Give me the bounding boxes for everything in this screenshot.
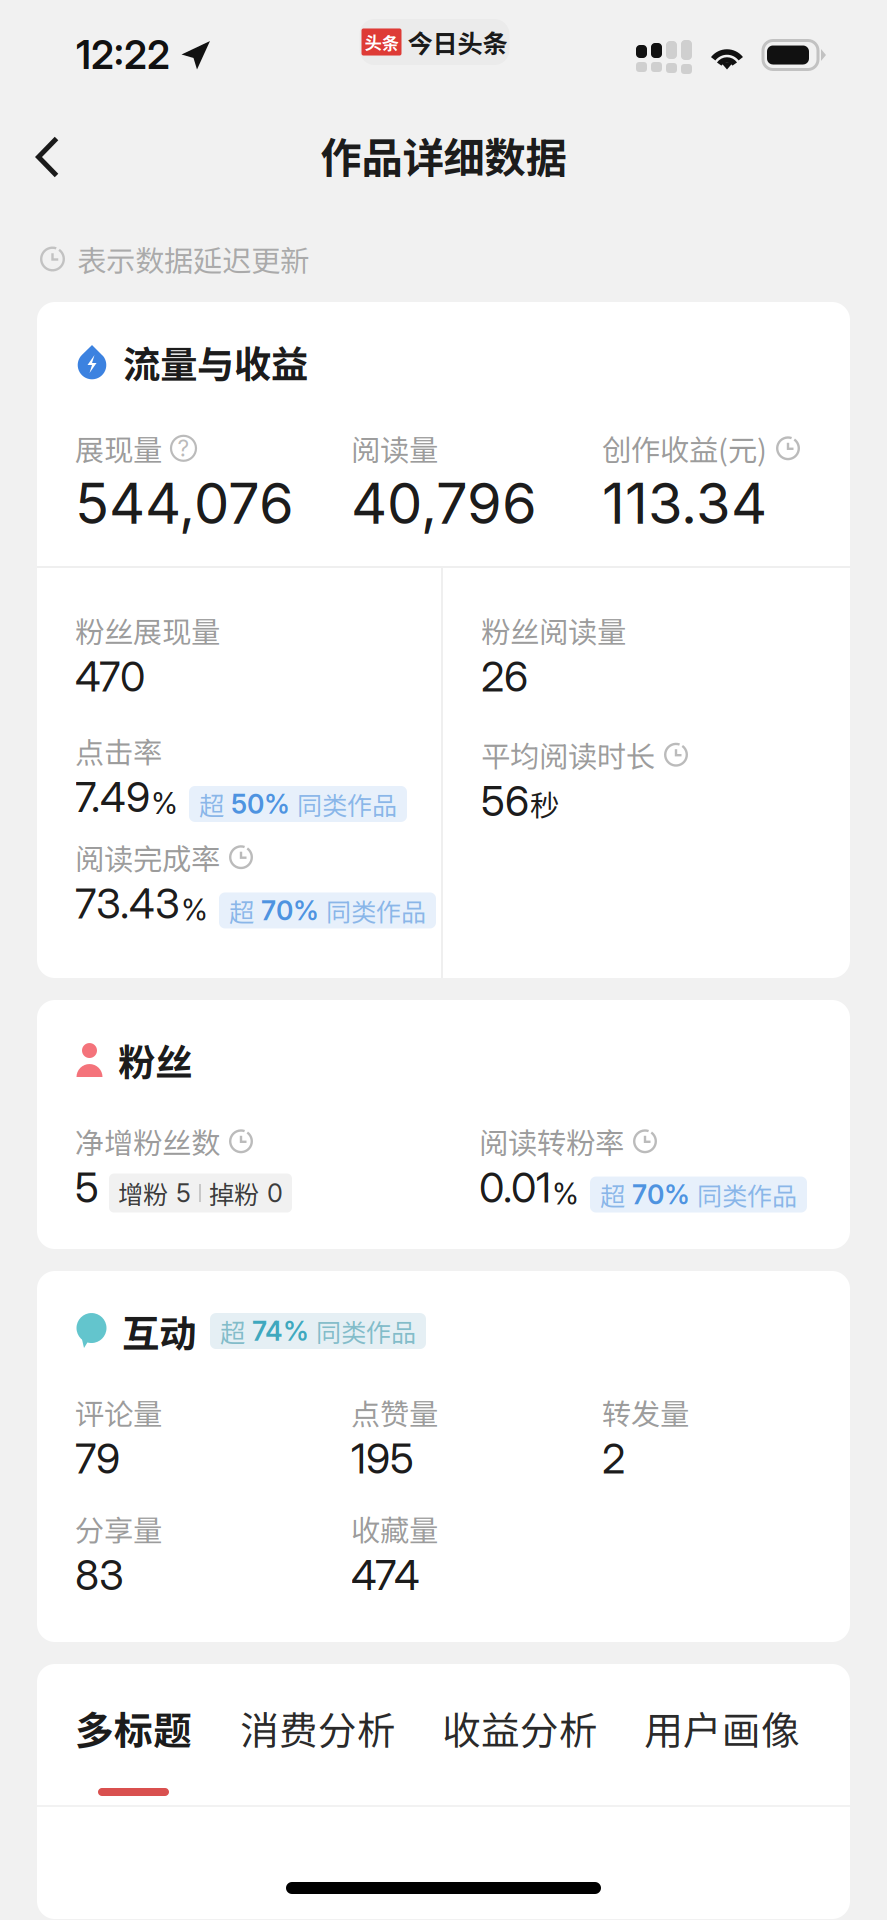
staticText: 消费分析 xyxy=(240,1700,396,1756)
staticText: % xyxy=(151,785,178,821)
staticText: 195 xyxy=(351,1433,414,1483)
staticText: 收藏量 xyxy=(351,1507,438,1550)
staticText: 今日头条 xyxy=(407,24,507,60)
staticText: 收益分析 xyxy=(442,1700,598,1756)
staticText: 头条 xyxy=(364,29,398,55)
staticText: 113.34 xyxy=(602,469,767,537)
button[interactable]: 用户画像 xyxy=(644,1700,800,1756)
staticText: 表示数据延迟更新 xyxy=(77,238,309,280)
staticText: 同类作品 xyxy=(297,786,397,822)
staticText: 点击率 xyxy=(75,729,162,772)
staticText: 79 xyxy=(75,1433,120,1483)
staticText: 展现量 xyxy=(75,427,162,470)
staticText: 超 xyxy=(220,1313,245,1349)
staticText: 粉丝展现量 xyxy=(75,609,220,651)
staticText: 40,796 xyxy=(351,469,537,537)
staticText: 互动 xyxy=(122,1304,196,1358)
staticText: 多标题 xyxy=(75,1700,192,1756)
staticText: 阅读完成率 xyxy=(75,836,220,878)
staticText: 12:22 xyxy=(76,32,170,78)
staticText: 2 xyxy=(602,1433,625,1483)
staticText: 作品详细数据 xyxy=(320,125,566,185)
staticText: 增粉 xyxy=(118,1175,168,1211)
staticText: 83 xyxy=(75,1550,124,1600)
staticText: 超 xyxy=(229,892,254,929)
staticText: 7.49 xyxy=(75,772,150,822)
staticText: 掉粉 xyxy=(209,1175,259,1211)
staticText: 超 xyxy=(199,786,224,822)
staticText: 平均阅读时长 xyxy=(481,733,655,776)
staticText: 创作收益(元) xyxy=(602,427,767,470)
staticText: 474 xyxy=(351,1550,420,1600)
staticText: 0.01 xyxy=(479,1162,551,1212)
staticText: 26 xyxy=(481,651,528,701)
staticText: 73.43 xyxy=(75,878,180,928)
staticText: 50% xyxy=(231,788,290,820)
staticText: 70% xyxy=(632,1178,690,1211)
staticText: 粉丝阅读量 xyxy=(481,609,626,651)
staticText: 70% xyxy=(261,894,319,927)
staticText: 56 xyxy=(481,776,529,826)
staticText: 74% xyxy=(252,1315,309,1347)
staticText: 分享量 xyxy=(75,1507,162,1550)
staticText: % xyxy=(181,892,208,927)
staticText: 阅读量 xyxy=(351,427,438,470)
staticText: % xyxy=(552,1176,579,1212)
staticText: 评论量 xyxy=(75,1391,162,1434)
staticText: 544,076 xyxy=(75,469,294,537)
staticText: 470 xyxy=(75,651,145,701)
button[interactable]: 多标题 xyxy=(75,1700,240,1796)
button[interactable]: 收益分析 xyxy=(442,1700,644,1756)
staticText: 同类作品 xyxy=(326,892,426,929)
staticText: 点赞量 xyxy=(351,1391,438,1434)
staticText: 5 xyxy=(176,1178,191,1208)
staticText: 流量与收益 xyxy=(123,335,308,389)
staticText: 同类作品 xyxy=(316,1313,416,1349)
staticText: 0 xyxy=(267,1178,283,1208)
staticText: 转发量 xyxy=(602,1391,689,1434)
staticText: 秒 xyxy=(530,782,559,825)
button[interactable]: 消费分析 xyxy=(240,1700,442,1756)
staticText: ? xyxy=(177,435,189,462)
staticText: 同类作品 xyxy=(697,1176,797,1213)
staticText: 用户画像 xyxy=(644,1700,800,1756)
button[interactable]: 返回 xyxy=(0,112,89,202)
staticText: 阅读转粉率 xyxy=(479,1120,624,1163)
staticText: 5 xyxy=(75,1162,99,1212)
staticText: 净增粉丝数 xyxy=(75,1120,220,1163)
staticText: 粉丝 xyxy=(118,1033,192,1087)
staticText: 超 xyxy=(600,1176,625,1213)
